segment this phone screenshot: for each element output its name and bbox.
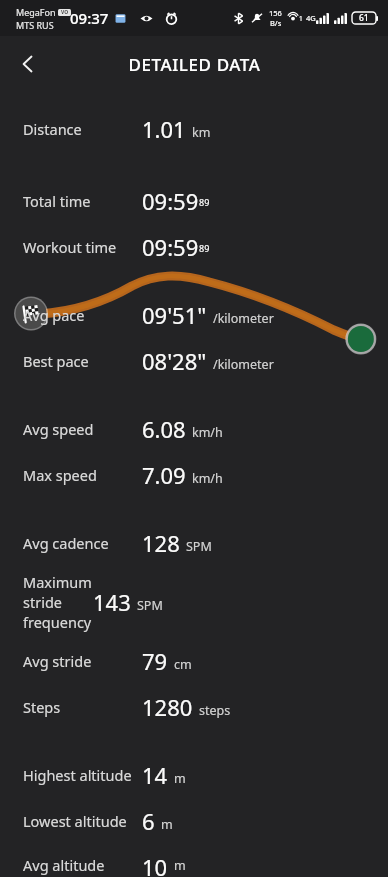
staticText: 89	[199, 196, 210, 208]
button[interactable]: Highest altitude	[0, 760, 388, 790]
staticText: m	[174, 857, 186, 874]
button[interactable]: Back	[6, 42, 50, 86]
staticText: DETAILED DATA	[128, 53, 261, 76]
staticText: 1280	[142, 692, 193, 722]
staticText: 4G	[306, 13, 316, 23]
staticText: km/h	[192, 470, 223, 487]
staticText: /kilometer	[213, 356, 274, 373]
staticText: 7.09	[142, 460, 186, 490]
staticText: 61	[359, 12, 369, 24]
staticText: 1.01	[142, 114, 186, 144]
button[interactable]: Avg pace	[0, 300, 388, 330]
button[interactable]: Avg cadence	[0, 528, 388, 558]
staticText: 143	[93, 587, 131, 617]
staticText: Best pace	[23, 351, 89, 371]
staticText: 08'28"	[142, 346, 207, 376]
button[interactable]: Lowest altitude	[0, 806, 388, 836]
staticText: km	[192, 124, 211, 141]
staticText: cm	[174, 656, 192, 673]
staticText: m	[161, 816, 173, 833]
staticText: MegaFon	[16, 6, 56, 18]
staticText: Avg pace	[23, 305, 85, 325]
staticText: 10	[142, 852, 168, 877]
staticText: Total time	[23, 191, 91, 211]
staticText: 156	[269, 8, 282, 18]
staticText: Avg cadence	[23, 533, 109, 553]
staticText: 14	[142, 760, 168, 790]
staticText: steps	[199, 702, 231, 719]
button[interactable]: Steps	[0, 692, 388, 722]
staticText: Distance	[23, 119, 82, 139]
button[interactable]: Total time	[0, 186, 388, 216]
staticText: 128	[142, 528, 180, 558]
staticText: 79	[142, 646, 168, 676]
staticText: Lowest altitude	[23, 811, 127, 831]
staticText: SPM	[137, 597, 163, 614]
button[interactable]: Workout time	[0, 232, 388, 262]
staticText: 09:59	[142, 186, 199, 216]
staticText: 1	[299, 14, 303, 23]
staticText: 09:37	[70, 8, 109, 28]
staticText: Max speed	[23, 465, 97, 485]
staticText: Steps	[23, 697, 61, 717]
button[interactable]: Max speed	[0, 460, 388, 490]
staticText: /kilometer	[213, 310, 274, 327]
staticText: km/h	[192, 424, 223, 441]
button[interactable]: Best pace	[0, 346, 388, 376]
button[interactable]: Avg speed	[0, 414, 388, 444]
staticText: 6	[142, 806, 155, 836]
staticText: 09'51"	[142, 300, 207, 330]
button[interactable]: Avg altitude	[0, 852, 388, 877]
staticText: Highest altitude	[23, 765, 132, 785]
button[interactable]: Distance	[0, 114, 388, 144]
staticText: SPM	[186, 538, 212, 555]
staticText: 6.08	[142, 414, 186, 444]
staticText: VO	[61, 9, 69, 16]
staticText: 09:59	[142, 232, 199, 262]
staticText: B/s	[270, 18, 282, 28]
staticText: 89	[199, 242, 210, 254]
staticText: MTS RUS	[16, 19, 54, 31]
button[interactable]: Avg stride	[0, 646, 388, 676]
staticText: Maximum stride frequency	[23, 572, 93, 632]
button[interactable]: Maximum stride frequency	[0, 572, 388, 632]
staticText: Avg stride	[23, 651, 92, 671]
staticText: Workout time	[23, 237, 117, 257]
staticText: Avg speed	[23, 419, 94, 439]
staticText: m	[174, 770, 186, 787]
staticText: Avg altitude	[23, 855, 105, 875]
